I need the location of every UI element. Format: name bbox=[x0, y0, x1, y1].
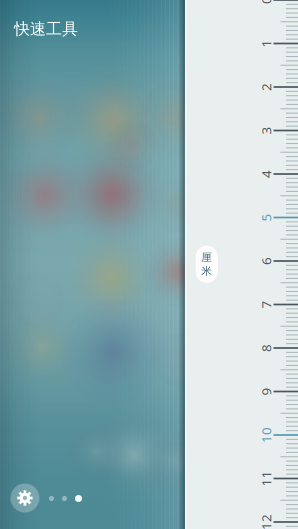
staticText: 4 bbox=[262, 165, 270, 183]
staticText: 米 bbox=[201, 264, 212, 277]
staticText: 10 bbox=[258, 426, 274, 444]
staticText: 3 bbox=[262, 122, 270, 139]
staticText: 快速工具 bbox=[14, 19, 78, 39]
staticText: 11 bbox=[258, 470, 274, 487]
staticText: 5 bbox=[262, 209, 270, 226]
staticText: 7 bbox=[262, 296, 270, 313]
staticText: 0 bbox=[262, 0, 270, 9]
staticText: 厘 bbox=[201, 251, 212, 264]
button[interactable]: 厘 bbox=[196, 246, 218, 283]
button[interactable]: Settings bbox=[8, 481, 41, 514]
staticText: 8 bbox=[262, 339, 270, 357]
staticText: 1 bbox=[262, 35, 270, 52]
staticText: 6 bbox=[262, 252, 270, 270]
staticText: 9 bbox=[262, 383, 270, 400]
staticText: 12 bbox=[258, 513, 274, 529]
staticText: 2 bbox=[262, 78, 270, 96]
